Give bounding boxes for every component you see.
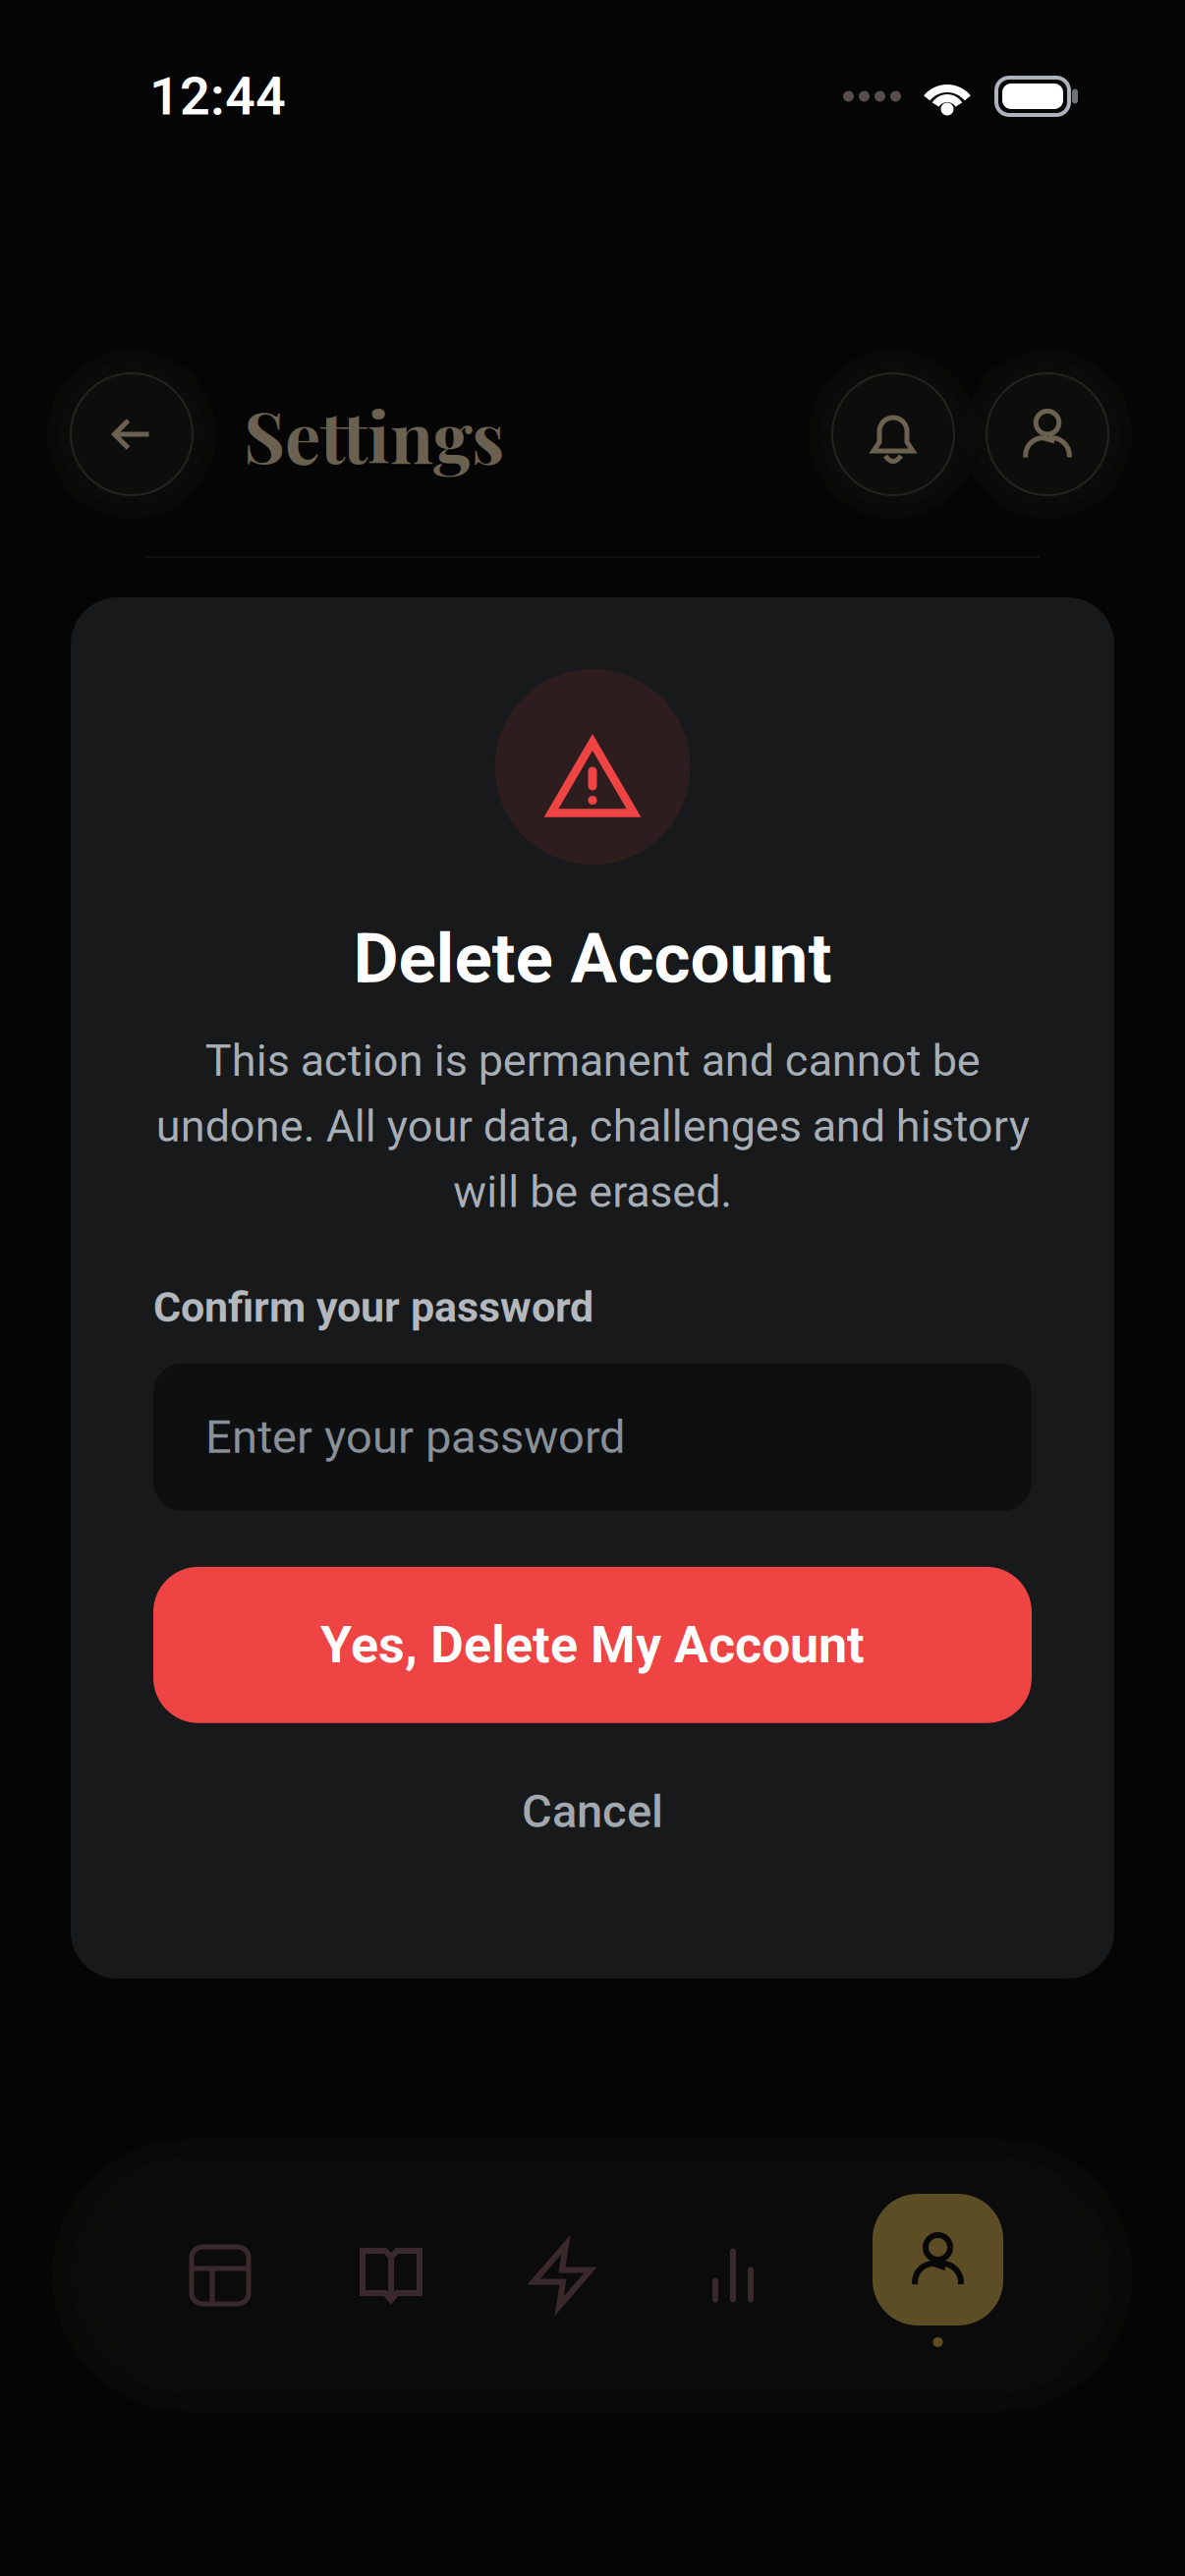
staticText: This action is permanent and cannot be u…	[156, 1035, 1029, 1218]
staticText: Yes, Delete My Account	[320, 1615, 865, 1675]
button[interactable]: Stats	[648, 2172, 818, 2379]
staticText: Enter your password	[205, 1410, 626, 1464]
button[interactable]: Cancel	[153, 1777, 1032, 1846]
button[interactable]: Library	[306, 2172, 477, 2379]
button[interactable]: Dashboard	[135, 2172, 306, 2379]
button[interactable]: Profile	[987, 373, 1108, 495]
button[interactable]: Yes, Delete My Account	[153, 1567, 1032, 1723]
staticText: Confirm your password	[153, 1282, 593, 1332]
staticText: Settings	[244, 387, 504, 481]
button[interactable]: Profile	[873, 2172, 1003, 2379]
staticText: Cancel	[522, 1784, 663, 1839]
staticText: 12:44	[149, 65, 286, 127]
button[interactable]: Back	[71, 373, 193, 495]
staticText: Delete Account	[353, 918, 832, 999]
button[interactable]: Notifications	[832, 373, 954, 495]
button[interactable]: Challenges	[477, 2172, 648, 2379]
